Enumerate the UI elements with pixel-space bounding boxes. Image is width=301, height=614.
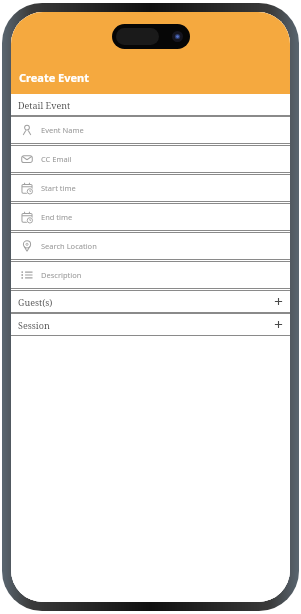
button[interactable]: Start time — [11, 175, 290, 201]
button[interactable]: Search Location — [11, 233, 290, 259]
button[interactable]: Event Name — [11, 117, 290, 143]
button[interactable]: CC Email — [11, 146, 290, 172]
button[interactable]: Detail Event — [11, 94, 290, 115]
staticText: Start time — [41, 183, 76, 193]
staticText: End time — [41, 212, 73, 222]
staticText: Create Event — [19, 70, 90, 85]
staticText: Guest(s) — [18, 296, 53, 308]
other: Add — [274, 297, 283, 306]
staticText: Search Location — [41, 241, 97, 251]
button[interactable]: Session — [11, 314, 290, 335]
staticText: Session — [18, 319, 50, 331]
button[interactable]: End time — [11, 204, 290, 230]
other: Add — [274, 320, 283, 329]
button[interactable]: Guest(s) — [11, 291, 290, 312]
staticText: Detail Event — [18, 99, 71, 111]
staticText: Description — [41, 270, 82, 280]
button[interactable]: Description — [11, 262, 290, 288]
staticText: Event Name — [41, 125, 84, 135]
staticText: CC Email — [41, 154, 72, 164]
